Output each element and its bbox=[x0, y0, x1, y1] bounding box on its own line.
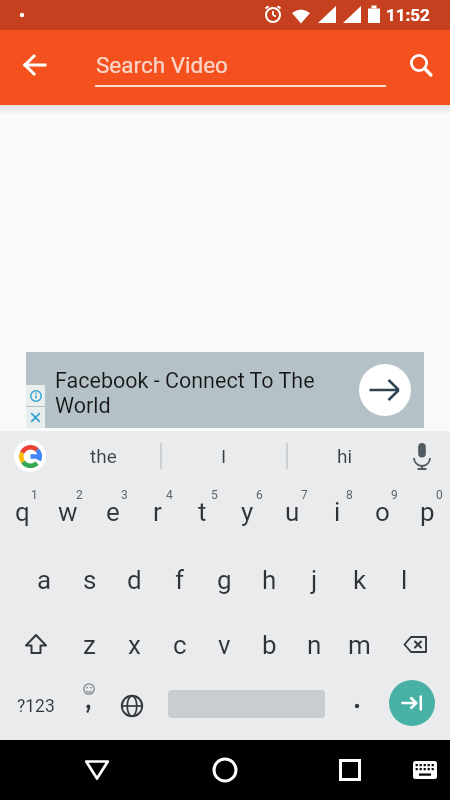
button[interactable]: z bbox=[67, 614, 112, 676]
button[interactable]: p bbox=[405, 481, 450, 543]
staticText: j bbox=[311, 565, 318, 595]
staticText: k bbox=[353, 565, 367, 595]
staticText: q bbox=[15, 497, 30, 527]
staticText: w bbox=[58, 497, 78, 527]
button[interactable] bbox=[328, 748, 372, 792]
button[interactable] bbox=[13, 43, 57, 87]
staticText: n bbox=[307, 630, 322, 660]
button[interactable] bbox=[75, 748, 119, 792]
button[interactable]: I bbox=[161, 431, 287, 481]
staticText: 0 bbox=[436, 488, 443, 502]
button[interactable]: a bbox=[22, 549, 67, 611]
staticText: 7 bbox=[301, 488, 308, 502]
button[interactable]: m bbox=[337, 614, 382, 676]
button[interactable]: l bbox=[382, 549, 427, 611]
staticText: 11:52 bbox=[386, 5, 430, 25]
staticText: y bbox=[241, 497, 254, 527]
staticText: 8 bbox=[346, 488, 353, 502]
staticText: c bbox=[173, 630, 187, 660]
button[interactable]: r bbox=[135, 481, 180, 543]
button[interactable]: ?123 bbox=[8, 678, 64, 734]
staticText: e bbox=[106, 497, 120, 527]
button[interactable] bbox=[110, 678, 154, 734]
staticText: f bbox=[175, 565, 185, 595]
staticText: l bbox=[401, 565, 408, 595]
staticText: d bbox=[127, 565, 142, 595]
button[interactable]: e bbox=[90, 481, 135, 543]
staticText: g bbox=[217, 565, 232, 595]
staticText: x bbox=[128, 630, 141, 660]
staticText: r bbox=[153, 497, 162, 527]
button[interactable] bbox=[387, 614, 443, 676]
button[interactable]: w bbox=[45, 481, 90, 543]
button[interactable]: s bbox=[67, 549, 112, 611]
button[interactable]: hi bbox=[287, 431, 403, 481]
button[interactable] bbox=[8, 614, 64, 676]
button[interactable] bbox=[68, 678, 108, 734]
staticText: 2 bbox=[76, 488, 83, 502]
button[interactable]: n bbox=[292, 614, 337, 676]
button[interactable]: d bbox=[112, 549, 157, 611]
button[interactable]: v bbox=[202, 614, 247, 676]
button[interactable]: the bbox=[46, 431, 160, 481]
staticText: z bbox=[83, 630, 96, 660]
button[interactable]: c bbox=[157, 614, 202, 676]
button[interactable]: b bbox=[247, 614, 292, 676]
button[interactable]: x bbox=[112, 614, 157, 676]
staticText: u bbox=[285, 497, 300, 527]
staticText: s bbox=[83, 565, 97, 595]
staticText: Search Video bbox=[96, 52, 228, 78]
button[interactable]: f bbox=[157, 549, 202, 611]
staticText: 4 bbox=[166, 488, 173, 502]
button[interactable] bbox=[14, 440, 46, 472]
button[interactable] bbox=[337, 678, 377, 734]
staticText: Facebook - Connect To The World bbox=[55, 368, 315, 418]
staticText: t bbox=[198, 497, 207, 527]
button[interactable]: y bbox=[225, 481, 270, 543]
button[interactable]: q bbox=[0, 481, 45, 543]
button[interactable] bbox=[405, 750, 445, 790]
staticText: hi bbox=[337, 445, 353, 467]
staticText: p bbox=[420, 497, 435, 527]
staticText: a bbox=[37, 565, 52, 595]
button[interactable]: t bbox=[180, 481, 225, 543]
staticText: b bbox=[262, 630, 277, 660]
staticText: I bbox=[221, 445, 227, 467]
staticText: 9 bbox=[391, 488, 398, 502]
button[interactable] bbox=[203, 748, 247, 792]
button[interactable]: g bbox=[202, 549, 247, 611]
staticText: m bbox=[348, 630, 371, 660]
button[interactable] bbox=[389, 680, 435, 726]
staticText: 1 bbox=[31, 488, 38, 502]
staticText: v bbox=[218, 630, 231, 660]
staticText: h bbox=[262, 565, 277, 595]
staticText: o bbox=[375, 497, 390, 527]
staticText: the bbox=[90, 445, 117, 467]
button[interactable] bbox=[399, 43, 443, 87]
button[interactable]: j bbox=[292, 549, 337, 611]
staticText: i bbox=[334, 497, 341, 527]
staticText: 6 bbox=[256, 488, 263, 502]
button[interactable]: i bbox=[315, 481, 360, 543]
staticText: ?123 bbox=[17, 696, 55, 717]
button[interactable]: Facebook - Connect To The World bbox=[26, 352, 424, 428]
button[interactable]: k bbox=[337, 549, 382, 611]
staticText: 5 bbox=[211, 488, 218, 502]
staticText: 3 bbox=[121, 488, 128, 502]
button[interactable]: h bbox=[247, 549, 292, 611]
button[interactable]: o bbox=[360, 481, 405, 543]
button[interactable]: u bbox=[270, 481, 315, 543]
